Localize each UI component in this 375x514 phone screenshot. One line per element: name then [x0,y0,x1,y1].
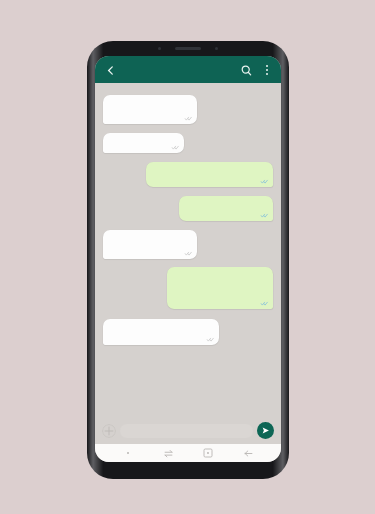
button[interactable] [167,267,273,309]
button[interactable]: Menu [121,446,135,460]
button[interactable]: Send [257,422,274,439]
button[interactable] [103,230,197,259]
button[interactable]: Back [101,61,119,79]
button[interactable]: More options [258,61,276,79]
button[interactable] [103,133,184,153]
button[interactable]: Search [237,61,255,79]
button[interactable] [179,196,273,221]
button[interactable]: Home [201,446,215,460]
button[interactable]: Back [241,446,255,460]
button[interactable] [146,162,273,187]
button[interactable] [103,95,197,124]
button[interactable]: Recent apps [161,446,175,460]
button[interactable] [103,319,219,345]
button[interactable]: Attach [102,424,116,438]
